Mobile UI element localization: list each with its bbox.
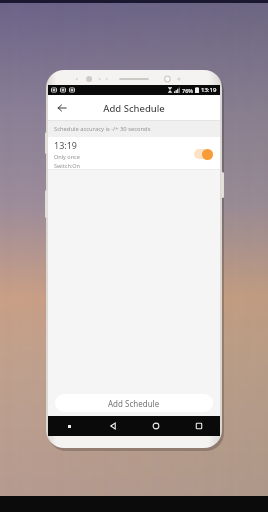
button[interactable]: Home (134, 416, 177, 436)
staticText: 13:19 (201, 86, 217, 94)
button[interactable]: Back (53, 99, 71, 117)
staticText: Switch:On (54, 162, 80, 169)
button[interactable]: Schedule enabled toggle (192, 147, 214, 161)
staticText: 76% (182, 87, 193, 94)
button[interactable]: Back (91, 416, 134, 436)
staticText: Only once (54, 153, 80, 160)
button[interactable]: Add Schedule (55, 394, 213, 412)
staticText: Add Schedule (108, 398, 160, 409)
staticText: Add Schedule (103, 102, 165, 115)
staticText: Schedule accuracy is -/+ 30 seconds (54, 125, 151, 133)
button[interactable]: Recents (177, 416, 220, 436)
staticText: 13:19 (54, 139, 78, 151)
button[interactable]: Keyboard indicator (48, 416, 91, 436)
button[interactable]: 13:19 (48, 137, 220, 170)
